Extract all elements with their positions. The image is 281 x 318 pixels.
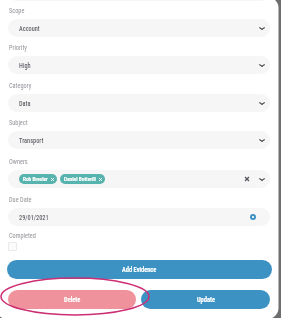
button[interactable]: Rob Bresler [8,170,270,188]
staticText: Daniel Botterill [64,176,96,182]
staticText: Subject [9,119,28,126]
staticText: Completed [9,232,36,239]
button[interactable]: Delete [8,290,136,309]
staticText: Transport [19,137,44,144]
button[interactable]: Completed checkbox [8,242,17,251]
button[interactable]: Pick date [247,211,259,223]
staticText: Rob Bresler [23,176,48,182]
staticText: Delete [64,296,81,304]
staticText: Data [19,100,31,107]
staticText: Update [197,296,215,304]
button[interactable]: Data [8,94,270,112]
staticText: Priority [9,44,27,51]
staticText: Add Evidence [122,266,157,274]
button[interactable]: Rob Bresler [19,174,57,184]
button[interactable]: Transport [8,131,270,149]
staticText: Owners [9,158,28,165]
button[interactable]: Add Evidence [7,260,272,279]
button[interactable]: Daniel Botterill [60,174,105,184]
staticText: Category [9,82,32,89]
button[interactable]: High [8,56,270,74]
staticText: Scope [9,7,25,14]
other: Clear owners [245,177,249,181]
button[interactable]: Update [141,290,270,309]
staticText: Account [19,25,40,32]
staticText: Due Date [9,196,32,203]
staticText: High [19,62,31,69]
staticText: 29/01/2021 [19,214,49,221]
button[interactable]: Account [8,19,270,37]
button[interactable]: 29/01/2021 [8,208,270,226]
